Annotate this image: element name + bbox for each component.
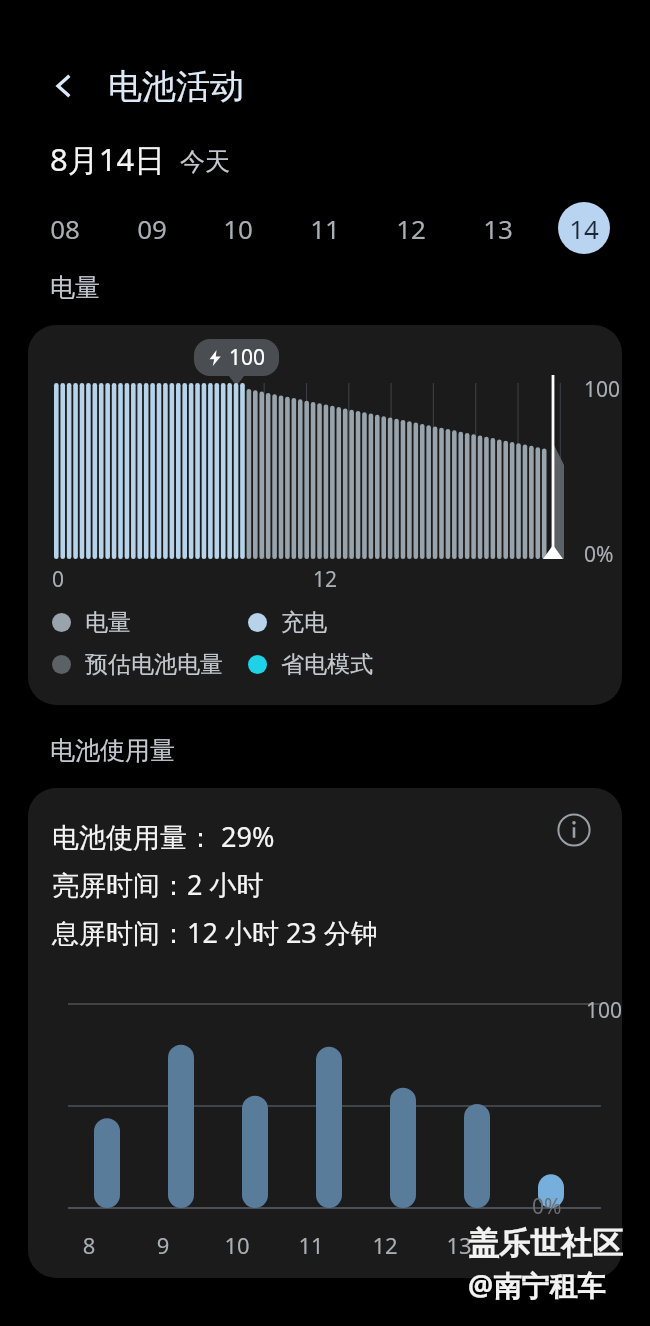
button[interactable]: Back (42, 64, 86, 108)
button[interactable]: 预估电池电量 (52, 650, 248, 679)
button[interactable]: 12 (385, 202, 437, 254)
staticText: 0% (532, 1192, 562, 1221)
staticText: 息屏时间：12 小时 23 分钟 (52, 914, 378, 951)
button[interactable]: 电量 (52, 608, 248, 637)
staticText: 9 (148, 1230, 178, 1260)
staticText: 8月14日 (50, 138, 166, 180)
staticText: 10 (222, 1230, 252, 1260)
staticText: 充电 (281, 608, 327, 637)
staticText: 亮屏时间：2 小时 (52, 866, 264, 903)
staticText: 10 (223, 211, 253, 246)
button[interactable]: 09 (126, 202, 178, 254)
button[interactable]: 充电 (248, 608, 327, 637)
button[interactable]: 08 (39, 202, 91, 254)
staticText: 100 (584, 375, 621, 404)
staticText: 省电模式 (281, 650, 373, 679)
button[interactable]: 省电模式 (248, 650, 373, 679)
staticText: 预估电池电量 (85, 650, 223, 679)
staticText: 今天 (180, 146, 230, 177)
staticText: 电量 (50, 272, 100, 303)
staticText: 12 (370, 1230, 400, 1260)
staticText: 14 (569, 211, 599, 246)
staticText: 13 (483, 211, 513, 246)
button[interactable]: 11 (299, 202, 351, 254)
staticText: 电池使用量 (50, 735, 175, 766)
staticText: 100 (586, 996, 622, 1025)
staticText: 12 (396, 211, 426, 246)
staticText: 09 (137, 211, 167, 246)
button[interactable]: 13 (472, 202, 524, 254)
staticText: 13 (444, 1230, 474, 1260)
staticText: @南宁租车 (468, 1266, 606, 1304)
staticText: 8 (74, 1230, 104, 1260)
staticText: 100 (229, 343, 266, 372)
staticText: 电池使用量： 29% (52, 818, 275, 855)
staticText: 电量 (85, 608, 131, 637)
button[interactable]: Info (552, 808, 596, 852)
button[interactable]: 14 (558, 202, 610, 254)
staticText: 盖乐世社区 (468, 1224, 623, 1263)
staticText: 08 (50, 211, 80, 246)
staticText: 12 (313, 565, 338, 594)
staticText: 11 (310, 211, 340, 246)
button[interactable]: 100 (28, 325, 622, 705)
staticText: 0% (584, 540, 614, 569)
staticText: 0 (52, 565, 65, 594)
staticText: 电池活动 (108, 65, 244, 108)
button[interactable]: 10 (212, 202, 264, 254)
button[interactable]: 电池使用量： 29% (28, 788, 622, 1278)
staticText: 11 (296, 1230, 326, 1260)
